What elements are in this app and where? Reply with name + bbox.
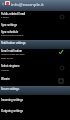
staticText: Notification settings bbox=[1, 41, 26, 45]
staticText: Notify in status bar when bbox=[1, 53, 25, 56]
button[interactable]: Sync schedule bbox=[0, 29, 70, 39]
button[interactable]: Incoming settings bbox=[0, 95, 70, 105]
button[interactable]: More bbox=[59, 14, 64, 19]
button[interactable]: More bbox=[59, 65, 64, 70]
staticText: Outgoing settings bbox=[1, 109, 23, 113]
staticText: 5 Emails bbox=[1, 16, 9, 19]
button[interactable]: Vibrate bbox=[0, 75, 70, 85]
staticText: Incoming settings bbox=[1, 98, 23, 102]
button[interactable]: Email notification bbox=[0, 48, 70, 60]
button[interactable]: Sync settings bbox=[0, 21, 70, 27]
button[interactable]: Back bbox=[0, 0, 5, 7]
button[interactable]: Off bbox=[56, 76, 66, 86]
staticText: Push/Off-Peak schedule bbox=[1, 34, 24, 37]
staticText: Public-related Email bbox=[1, 12, 26, 16]
staticText: Select ringtone bbox=[1, 64, 20, 68]
staticText: Postman bbox=[1, 69, 10, 72]
staticText: info@example.it bbox=[11, 1, 44, 7]
button[interactable]: Outgoing settings bbox=[0, 106, 70, 116]
staticText: Sync settings bbox=[1, 23, 17, 27]
button[interactable]: Select ringtone bbox=[0, 63, 70, 73]
button[interactable]: Public-related Email bbox=[0, 11, 70, 20]
staticText: email arrives bbox=[1, 57, 14, 60]
staticText: Email notification bbox=[1, 49, 23, 53]
staticText: Sync schedule bbox=[1, 30, 19, 34]
button[interactable]: On bbox=[56, 47, 66, 57]
staticText: Vibrate bbox=[1, 77, 10, 81]
staticText: Server settings bbox=[1, 87, 20, 91]
